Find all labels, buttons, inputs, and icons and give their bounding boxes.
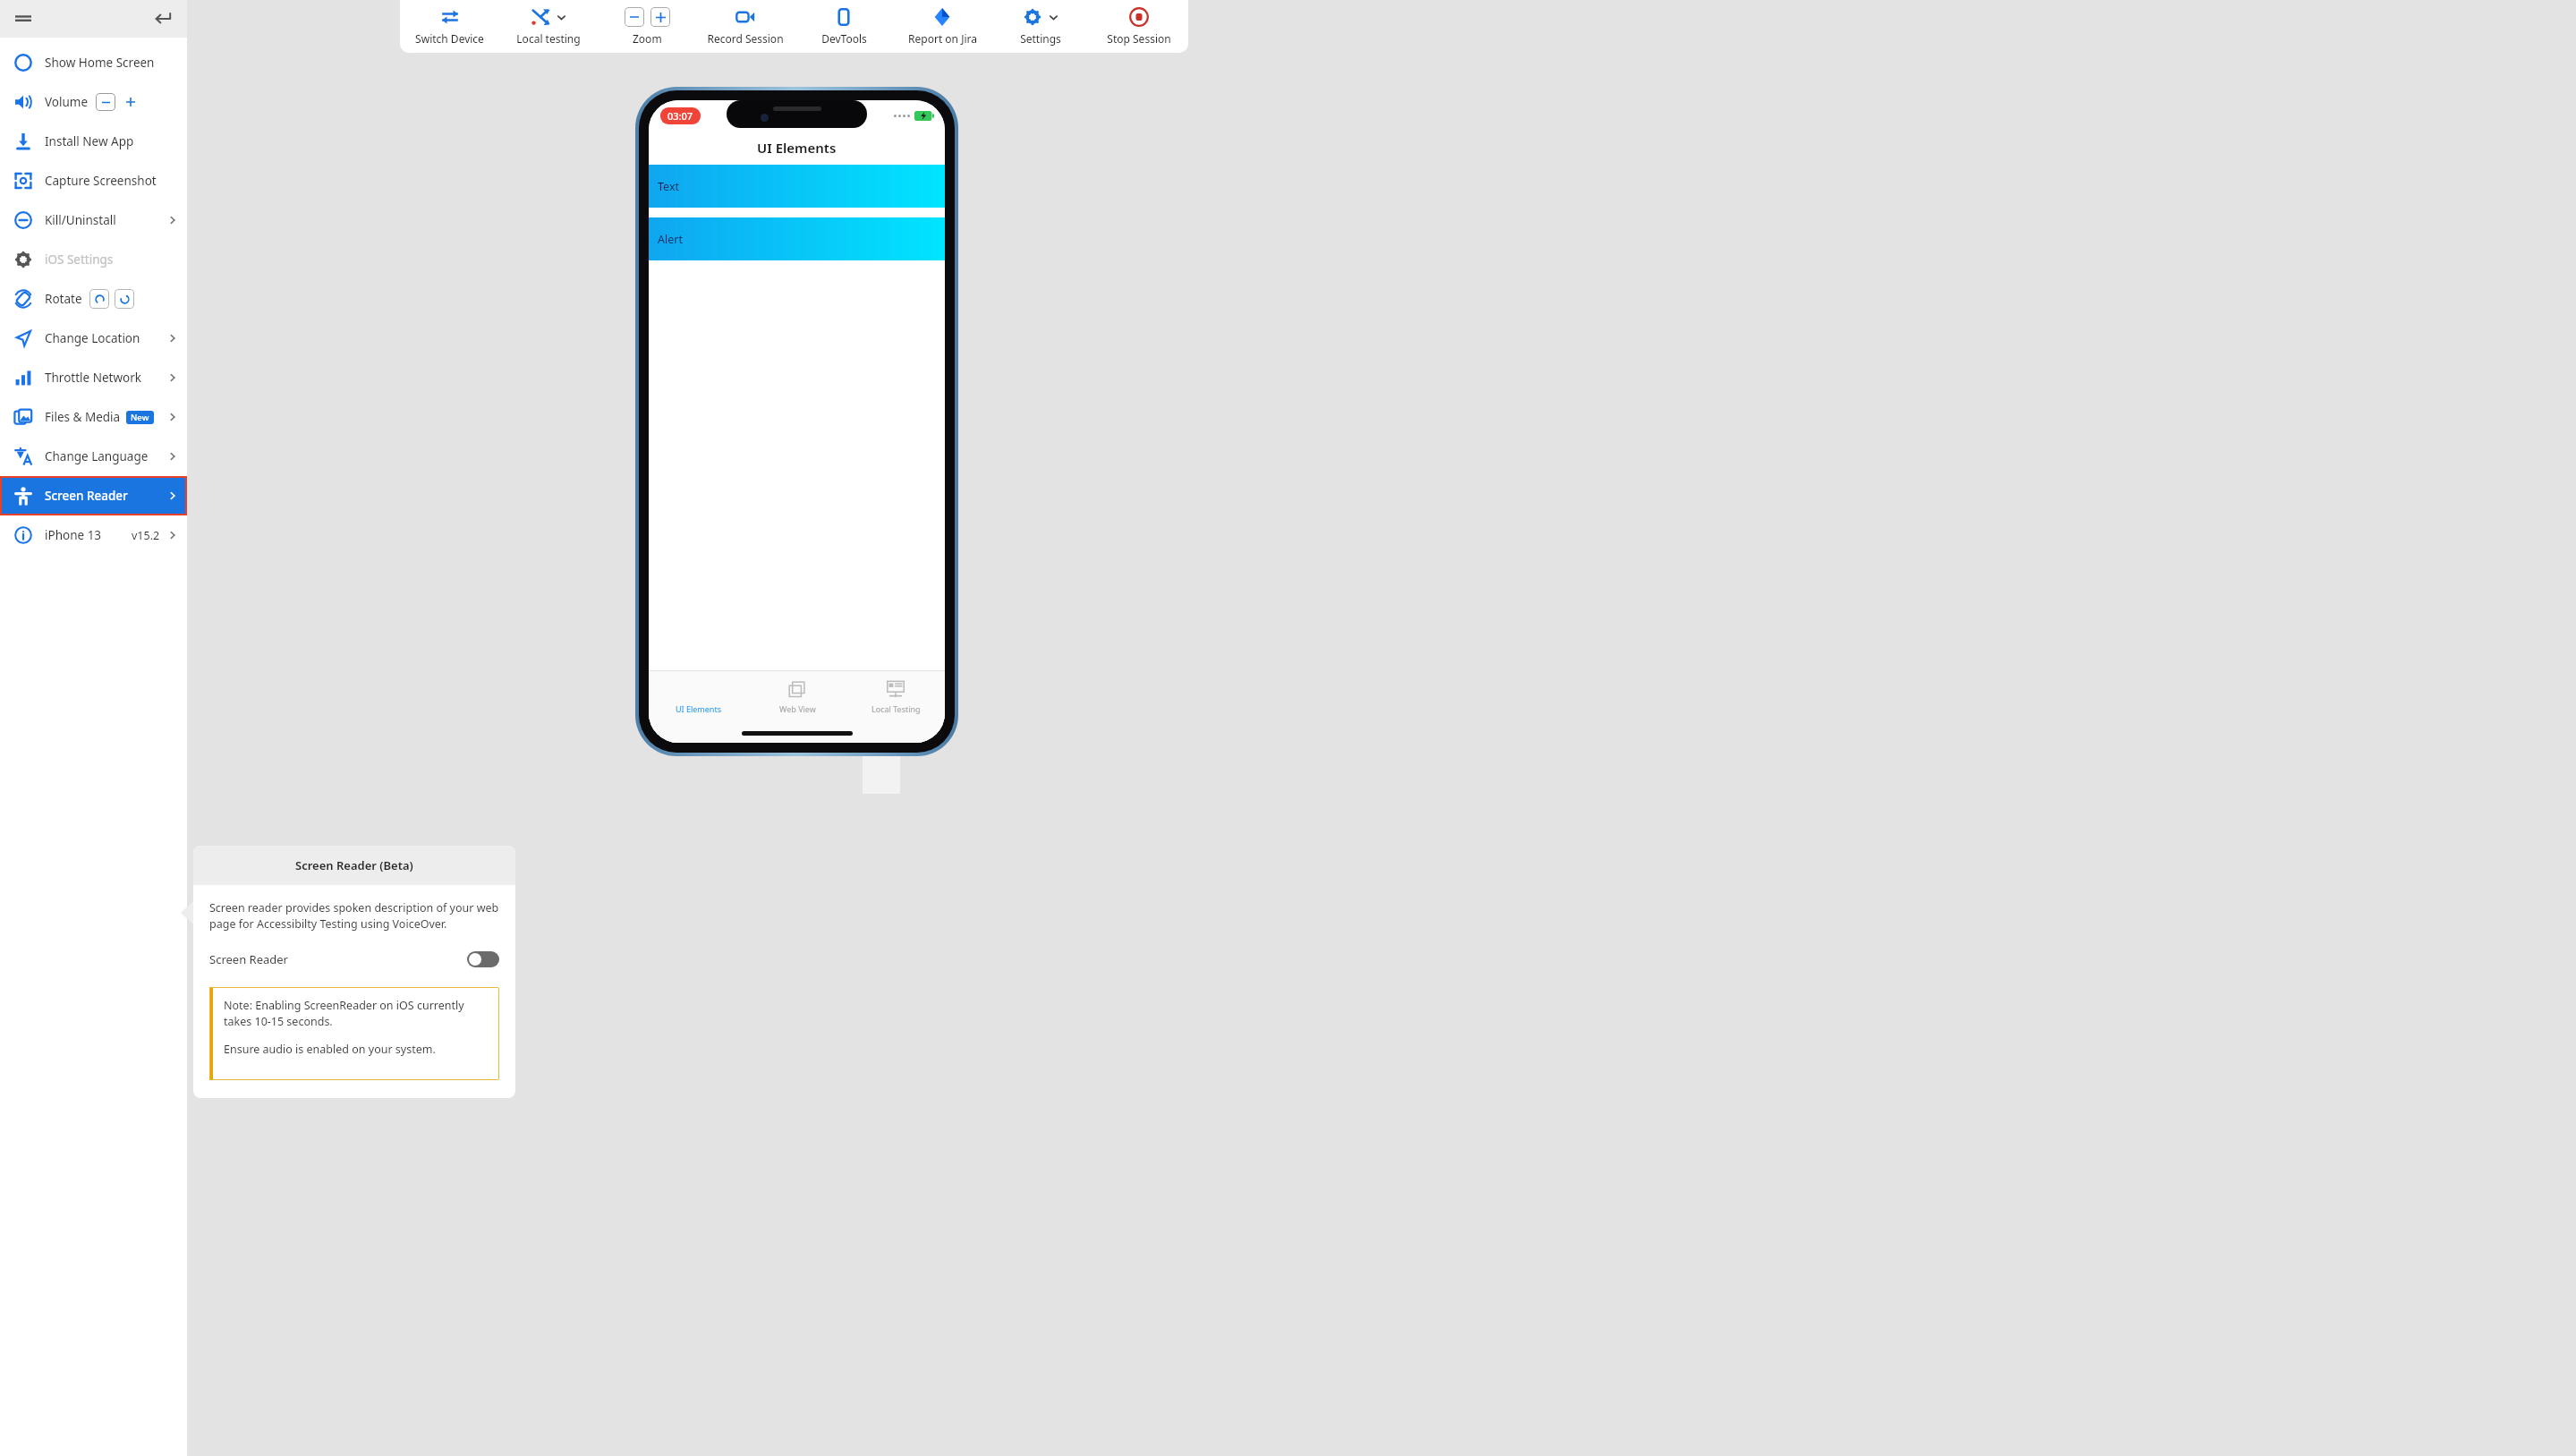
staticText: Screen reader provides spoken descriptio… [209, 900, 499, 932]
staticText: Zoom [633, 31, 662, 46]
staticText: Screen Reader [209, 951, 288, 967]
staticText: Local Testing [871, 703, 921, 714]
button[interactable]: Record Session [696, 0, 795, 53]
button[interactable]: Files & Media [0, 397, 187, 437]
staticText: Files & Media [45, 409, 121, 425]
staticText: DevTools [821, 31, 867, 46]
staticText: New [131, 412, 149, 423]
button[interactable]: DevTools [795, 0, 893, 53]
button[interactable]: Capture Screenshot [0, 161, 187, 200]
button[interactable]: Rotate [0, 279, 187, 319]
button[interactable]: Change Language [0, 437, 187, 476]
staticText: Screen Reader (Beta) [295, 857, 413, 873]
button[interactable]: Text [649, 165, 945, 208]
button[interactable]: Screen Reader [2, 478, 185, 514]
button[interactable]: Throttle Network [0, 358, 187, 397]
staticText: Change Language [45, 448, 149, 464]
staticText: Web View [779, 703, 816, 714]
staticText: iPhone 13 [45, 527, 102, 543]
button[interactable]: Zoom in [650, 7, 670, 27]
button[interactable]: Screen Reader toggle [467, 951, 499, 967]
button[interactable]: Alert [649, 217, 945, 260]
staticText: Install New App [45, 133, 134, 149]
staticText: Screen Reader [45, 488, 128, 504]
staticText: Switch Device [415, 31, 484, 46]
staticText: Volume [45, 94, 89, 110]
staticText: Text [658, 179, 680, 194]
button[interactable]: Stop Session [1090, 0, 1188, 53]
button[interactable]: Report on Jira [893, 0, 991, 53]
staticText: 03:07 [667, 109, 693, 123]
button[interactable]: UI Elements [649, 671, 748, 723]
button[interactable]: iPhone 13 [0, 515, 187, 555]
button[interactable]: Collapse sidebar [149, 4, 178, 33]
staticText: Ensure audio is enabled on your system. [224, 1042, 436, 1057]
staticText: Alert [658, 232, 683, 247]
button[interactable]: Volume [0, 82, 187, 122]
button[interactable]: Kill/Uninstall [0, 200, 187, 240]
staticText: Capture Screenshot [45, 173, 157, 189]
button[interactable]: Change Location [0, 319, 187, 358]
staticText: Rotate [45, 291, 82, 307]
staticText: v15.2 [132, 528, 160, 543]
staticText: Throttle Network [45, 370, 141, 386]
staticText: Local testing [516, 31, 581, 46]
staticText: Stop Session [1107, 31, 1171, 46]
button[interactable]: Local Testing [846, 671, 945, 723]
button[interactable]: Menu [9, 4, 38, 33]
button[interactable]: Rotate left [89, 289, 109, 309]
staticText: Note: Enabling ScreenReader on iOS curre… [224, 998, 490, 1029]
staticText: Change Location [45, 330, 140, 346]
button[interactable]: Web View [748, 671, 846, 723]
button[interactable]: Show Home Screen [0, 43, 187, 82]
button[interactable]: Install New App [0, 122, 187, 161]
button[interactable]: Volume up [121, 93, 140, 111]
staticText: Show Home Screen [45, 55, 155, 71]
staticText: Settings [1020, 31, 1061, 46]
staticText: Report on Jira [908, 31, 977, 46]
button[interactable]: Volume down [96, 93, 115, 111]
button[interactable]: Settings [991, 0, 1090, 53]
button[interactable]: Zoom out [625, 7, 644, 27]
button[interactable]: iOS Settings [0, 240, 187, 279]
button[interactable]: Rotate right [115, 289, 134, 309]
staticText: iOS Settings [45, 251, 114, 268]
staticText: UI Elements [676, 703, 721, 714]
staticText: UI Elements [757, 139, 837, 157]
staticText: Record Session [707, 31, 784, 46]
button[interactable]: Switch Device [400, 0, 499, 53]
button[interactable]: Local testing [499, 0, 598, 53]
staticText: Kill/Uninstall [45, 212, 116, 228]
